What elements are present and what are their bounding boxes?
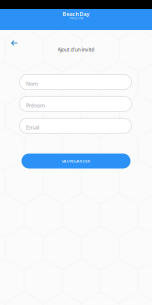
staticText: THALES DMS <box>69 16 83 20</box>
staticText: SAUVEGARDER <box>61 158 90 164</box>
staticText: Beach Day <box>62 10 89 18</box>
button[interactable]: SAUVEGARDER <box>21 153 130 168</box>
staticText: Ajout d'un invité <box>57 46 94 53</box>
staticText: Email <box>26 124 39 131</box>
button[interactable]: Back <box>7 36 22 50</box>
staticText: Nom <box>26 80 38 87</box>
staticText: Prénom <box>26 102 45 109</box>
